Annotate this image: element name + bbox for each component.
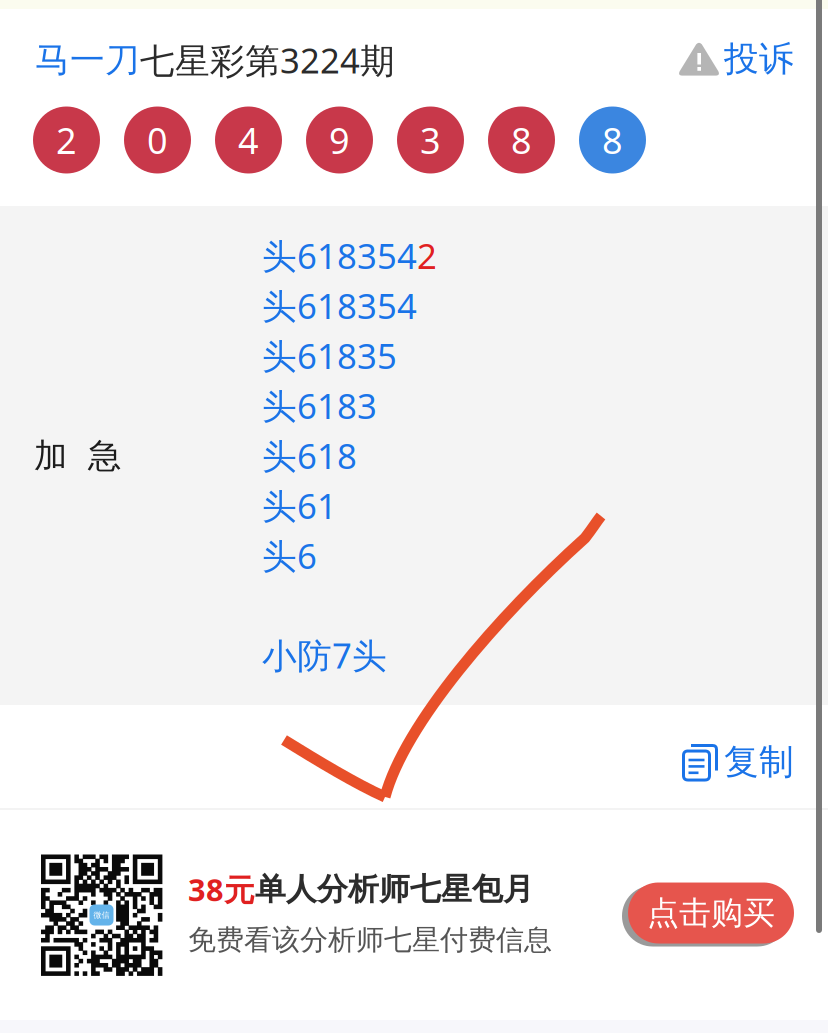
staticText: 马一刀: [35, 38, 140, 82]
staticText: 投诉: [724, 37, 794, 81]
staticText: 急: [88, 435, 121, 477]
staticText: 3: [420, 115, 441, 164]
staticText: 单人分析师七星包月: [255, 870, 534, 909]
staticText: 头618354: [262, 282, 417, 329]
staticText: 2: [417, 232, 437, 279]
button[interactable]: 复制: [574, 734, 794, 790]
staticText: 头6183: [262, 382, 377, 429]
staticText: 头61: [262, 482, 337, 529]
staticText: 七星彩第3224期: [140, 36, 395, 84]
button[interactable]: 投诉: [574, 30, 794, 88]
staticText: 头618: [262, 432, 357, 479]
button[interactable]: 点击购买: [624, 882, 798, 950]
staticText: 2: [56, 115, 77, 164]
staticText: 头6: [262, 532, 317, 579]
staticText: 9: [329, 115, 350, 164]
staticText: 4: [238, 115, 259, 164]
staticText: 小防7头: [262, 631, 387, 679]
staticText: 复制: [724, 740, 794, 784]
staticText: 8: [511, 115, 532, 164]
staticText: 38元: [188, 868, 255, 910]
staticText: 免费看该分析师七星付费信息: [188, 922, 552, 957]
staticText: 加: [34, 435, 67, 477]
staticText: 点击购买: [647, 893, 775, 933]
staticText: 8: [602, 115, 623, 164]
staticText: 0: [147, 115, 168, 164]
staticText: 头618354: [262, 232, 417, 279]
button[interactable]: 马一刀: [35, 31, 435, 89]
staticText: 微信: [93, 910, 109, 920]
staticText: 头61835: [262, 332, 397, 379]
